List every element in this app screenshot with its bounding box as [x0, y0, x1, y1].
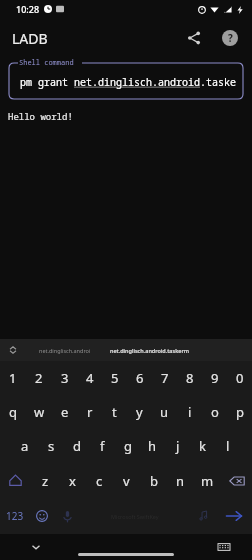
- button[interactable]: Switch keyboard: [214, 537, 234, 557]
- staticText: d: [73, 437, 81, 455]
- button[interactable]: Share: [180, 24, 208, 52]
- staticText: net.dinglisch.android.taskerm: [110, 347, 189, 354]
- staticText: 10:28: [16, 3, 40, 15]
- staticText: o: [211, 403, 219, 421]
- button[interactable]: a: [12, 429, 38, 463]
- button[interactable]: h: [140, 429, 165, 463]
- staticText: m: [201, 472, 214, 490]
- button[interactable]: j: [165, 429, 190, 463]
- button[interactable]: 5: [102, 361, 127, 395]
- staticText: l: [226, 437, 230, 455]
- staticText: 8: [186, 369, 194, 387]
- button[interactable]: 7: [152, 361, 177, 395]
- staticText: k: [199, 437, 206, 455]
- staticText: s: [48, 437, 55, 455]
- staticText: Shell command: [19, 58, 74, 68]
- staticText: 1: [9, 369, 17, 387]
- staticText: f: [100, 437, 105, 455]
- staticText: h: [148, 437, 157, 455]
- button[interactable]: p: [227, 395, 252, 429]
- staticText: 9: [211, 369, 219, 387]
- staticText: i: [188, 403, 192, 421]
- button[interactable]: 8: [177, 361, 202, 395]
- button[interactable]: m: [194, 463, 221, 498]
- staticText: 123: [6, 509, 24, 523]
- button[interactable]: 9: [202, 361, 227, 395]
- staticText: e: [61, 403, 69, 421]
- staticText: y: [136, 403, 143, 421]
- button[interactable]: Expand suggestions: [0, 339, 26, 361]
- staticText: v: [123, 472, 130, 490]
- staticText: w: [34, 403, 45, 421]
- button[interactable]: c: [86, 463, 113, 498]
- button[interactable]: l: [215, 429, 240, 463]
- button[interactable]: t: [102, 395, 127, 429]
- button[interactable]: 2: [26, 361, 52, 395]
- button[interactable]: 3: [52, 361, 77, 395]
- button[interactable]: y: [127, 395, 152, 429]
- staticText: 6: [136, 369, 144, 387]
- staticText: ?: [228, 31, 233, 45]
- button[interactable]: Hide keyboard: [26, 537, 46, 557]
- button[interactable]: z: [31, 463, 59, 498]
- button[interactable]: e: [52, 395, 77, 429]
- button[interactable]: 1: [0, 361, 26, 395]
- staticText: .taske: [200, 75, 236, 89]
- button[interactable]: w: [26, 395, 52, 429]
- button[interactable]: n: [167, 463, 194, 498]
- staticText: x: [69, 472, 76, 490]
- staticText: 4: [86, 369, 94, 387]
- staticText: t: [112, 403, 117, 421]
- button[interactable]: net.dinglisch.androi: [26, 339, 104, 361]
- staticText: g: [124, 437, 132, 455]
- button[interactable]: i: [177, 395, 202, 429]
- button[interactable]: u: [152, 395, 177, 429]
- button[interactable]: q: [0, 395, 26, 429]
- button[interactable]: o: [202, 395, 227, 429]
- button[interactable]: Settings: [190, 498, 216, 534]
- staticText: j: [176, 437, 180, 455]
- button[interactable]: Emoji: [30, 498, 54, 534]
- button[interactable]: net.dinglisch.android.taskerm: [104, 339, 252, 361]
- staticText: p: [236, 403, 244, 421]
- button[interactable]: b: [140, 463, 167, 498]
- button[interactable]: 6: [127, 361, 152, 395]
- button[interactable]: Voice input: [54, 498, 80, 534]
- staticText: 7: [161, 369, 169, 387]
- staticText: Hello world!: [8, 110, 73, 122]
- staticText: n: [176, 472, 185, 490]
- button[interactable]: k: [190, 429, 215, 463]
- staticText: Microsoft SwiftKey: [111, 513, 159, 520]
- staticText: 2: [35, 369, 43, 387]
- staticText: net.dinglisch.android: [74, 75, 200, 89]
- button[interactable]: r: [77, 395, 102, 429]
- staticText: r: [87, 403, 93, 421]
- button[interactable]: x: [59, 463, 86, 498]
- button[interactable]: s: [38, 429, 64, 463]
- button[interactable]: g: [115, 429, 140, 463]
- staticText: 3: [61, 369, 69, 387]
- button[interactable]: Enter: [216, 498, 252, 534]
- button[interactable]: Help: [216, 24, 244, 52]
- button[interactable]: v: [113, 463, 140, 498]
- staticText: q: [9, 403, 17, 421]
- button[interactable]: f: [90, 429, 115, 463]
- staticText: 5: [111, 369, 119, 387]
- staticText: net.dinglisch.androi: [39, 347, 91, 354]
- staticText: a: [21, 437, 29, 455]
- button[interactable]: 0: [227, 361, 252, 395]
- staticText: c: [96, 472, 103, 490]
- button[interactable]: Backspace: [221, 463, 252, 498]
- staticText: LADB: [12, 29, 48, 48]
- staticText: pm grant: [20, 75, 74, 89]
- button[interactable]: d: [64, 429, 90, 463]
- staticText: z: [42, 472, 49, 490]
- staticText: u: [160, 403, 169, 421]
- staticText: b: [150, 472, 158, 490]
- button[interactable]: Shift: [0, 463, 31, 498]
- staticText: 0: [236, 369, 244, 387]
- button[interactable]: 123: [0, 498, 30, 534]
- button[interactable]: 4: [77, 361, 102, 395]
